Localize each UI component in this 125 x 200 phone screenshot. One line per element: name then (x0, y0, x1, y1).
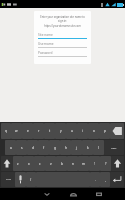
staticText: b (61, 162, 63, 166)
staticText: ! (94, 162, 95, 166)
staticText: ?123 (6, 178, 11, 181)
staticText: e (27, 129, 29, 133)
staticText: q (5, 129, 7, 133)
button[interactable]: a (5, 140, 16, 155)
staticText: r (38, 129, 40, 133)
staticText: f (43, 146, 45, 150)
button[interactable]: p (99, 123, 110, 139)
staticText: n (72, 162, 74, 166)
button[interactable]: v (45, 156, 56, 171)
staticText: Enter your organization site name to sig… (38, 15, 87, 23)
staticText: / (30, 178, 32, 182)
button[interactable]: Shift right (111, 156, 124, 171)
staticText: Next (111, 146, 117, 149)
button[interactable]: k (82, 140, 93, 155)
staticText: g (54, 146, 56, 150)
button[interactable]: d (27, 140, 38, 155)
button[interactable]: Back (42, 189, 52, 199)
button[interactable]: f (38, 140, 49, 155)
button[interactable]: Backspace (110, 123, 124, 139)
button[interactable]: , (100, 172, 110, 187)
button[interactable]: ! (89, 156, 100, 171)
staticText: s (21, 146, 23, 150)
button[interactable]: ?123 (1, 172, 15, 187)
staticText: y (60, 129, 62, 133)
button[interactable]: c (34, 156, 45, 171)
button[interactable]: t (44, 123, 55, 139)
button[interactable]: ? (100, 156, 111, 171)
button[interactable]: . (90, 172, 100, 187)
staticText: . (95, 178, 96, 182)
button[interactable]: q (1, 123, 11, 139)
button[interactable]: b (56, 156, 67, 171)
staticText: u (71, 129, 73, 133)
staticText: j (76, 146, 77, 150)
button[interactable]: n (67, 156, 78, 171)
staticText: , (105, 178, 106, 182)
button[interactable]: Shift (1, 156, 13, 171)
button[interactable]: z (13, 156, 23, 171)
button[interactable]: i (77, 123, 88, 139)
staticText: ? (105, 162, 107, 166)
button[interactable]: e (22, 123, 33, 139)
button[interactable]: h (60, 140, 71, 155)
staticText: w (15, 129, 18, 133)
staticText: x (28, 162, 30, 166)
staticText: v (50, 162, 52, 166)
button[interactable]: m (78, 156, 89, 171)
staticText: a (10, 146, 12, 150)
staticText: d (32, 146, 34, 150)
staticText: i (82, 129, 83, 133)
staticText: k (87, 146, 89, 150)
staticText: o (93, 129, 95, 133)
staticText: m (82, 162, 85, 166)
button[interactable]: / (26, 172, 36, 187)
button[interactable]: Recent apps (94, 189, 104, 199)
button[interactable]: u (66, 123, 77, 139)
button[interactable]: x (23, 156, 34, 171)
button[interactable]: l (93, 140, 104, 155)
staticText: https://yoursitename.site.com (38, 24, 87, 28)
staticText: t (49, 129, 51, 133)
button[interactable]: r (33, 123, 44, 139)
staticText: h (65, 146, 67, 150)
button[interactable]: Enter (110, 172, 124, 187)
button[interactable]: Home (68, 189, 78, 199)
button[interactable]: Next (104, 140, 124, 155)
button[interactable]: Site name (38, 33, 87, 39)
staticText: Site name (38, 33, 53, 37)
button[interactable]: y (55, 123, 66, 139)
staticText: c (39, 162, 41, 166)
staticText: Password (38, 51, 53, 55)
button[interactable]: Voice input (15, 172, 26, 187)
button[interactable]: g (49, 140, 60, 155)
button[interactable]: Username (38, 42, 87, 48)
staticText: z (17, 162, 19, 166)
button[interactable]: s (16, 140, 27, 155)
button[interactable]: o (88, 123, 99, 139)
button[interactable]: j (71, 140, 82, 155)
staticText: Username (38, 42, 54, 46)
staticText: p (104, 129, 106, 133)
staticText: l (98, 146, 99, 150)
button[interactable]: w (11, 123, 22, 139)
button[interactable]: Password (38, 51, 87, 57)
